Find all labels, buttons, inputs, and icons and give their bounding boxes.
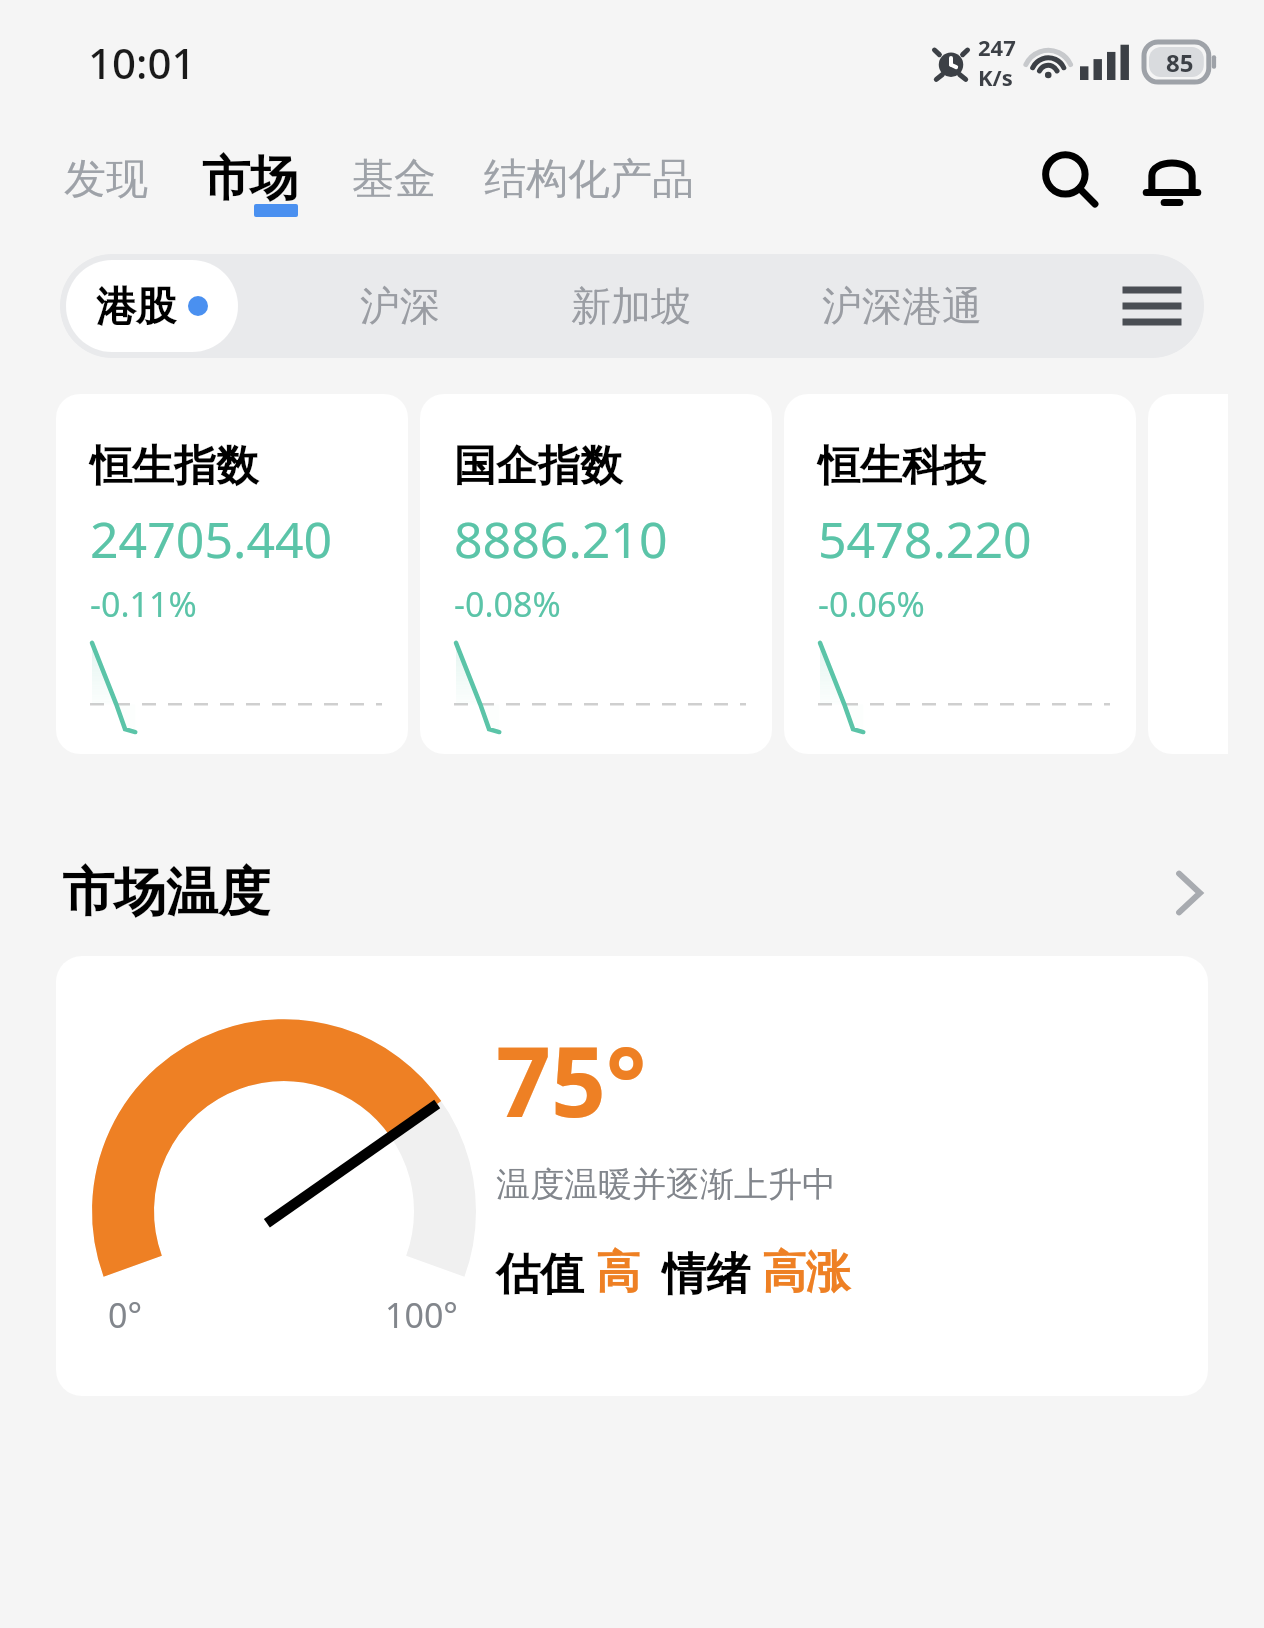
staticText: 0° bbox=[108, 1292, 142, 1338]
button[interactable]: 沪深港通 bbox=[812, 271, 992, 341]
staticText: 10:01 bbox=[88, 34, 196, 91]
staticText: 高涨 bbox=[762, 1245, 850, 1300]
staticText: 75° bbox=[496, 1014, 647, 1145]
staticText: 5478.220 bbox=[818, 505, 1032, 573]
staticText: 市场 bbox=[202, 149, 298, 209]
staticText: 基金 bbox=[352, 153, 436, 206]
staticText: 结构化产品 bbox=[484, 153, 694, 206]
button[interactable]: 结构化产品 bbox=[480, 147, 698, 212]
staticText: -0.08% bbox=[454, 581, 561, 627]
button[interactable]: 发现 bbox=[60, 147, 152, 212]
button[interactable]: 沪深 bbox=[350, 271, 450, 341]
button[interactable]: 基金 bbox=[348, 147, 440, 212]
staticText: 国企指数 bbox=[454, 440, 622, 493]
staticText: 情绪 bbox=[662, 1242, 762, 1302]
button[interactable]: Notifications bbox=[1128, 135, 1216, 223]
staticText: -0.06% bbox=[818, 581, 925, 627]
button[interactable]: 市场 bbox=[198, 143, 302, 215]
staticText: 估值 bbox=[496, 1242, 596, 1302]
button[interactable]: 恒生科技 bbox=[784, 394, 1136, 754]
button[interactable]: 市场温度 bbox=[0, 850, 1264, 936]
button[interactable]: 恒生指数 bbox=[56, 394, 408, 754]
button[interactable]: 港股 bbox=[66, 260, 238, 352]
staticText: 恒生指数 bbox=[90, 440, 258, 493]
staticText: 8886.210 bbox=[454, 505, 668, 573]
staticText: 高 bbox=[596, 1245, 640, 1300]
staticText: 市场温度 bbox=[62, 860, 270, 926]
staticText: 港股 bbox=[96, 281, 176, 331]
staticText: 85 bbox=[1166, 46, 1194, 79]
staticText: K/s bbox=[978, 62, 1013, 92]
staticText: 温度温暖并逐渐上升中 bbox=[496, 1163, 836, 1206]
button[interactable]: More markets bbox=[1114, 268, 1190, 344]
staticText: 24705.440 bbox=[90, 505, 333, 573]
staticText: 恒生科技 bbox=[818, 440, 986, 493]
staticText: 247 bbox=[978, 32, 1016, 62]
button[interactable]: 新加坡 bbox=[561, 271, 701, 341]
button[interactable]: 国企指数 bbox=[420, 394, 772, 754]
staticText: -0.11% bbox=[90, 581, 197, 627]
staticText: 100° bbox=[385, 1292, 458, 1338]
button[interactable]: 0° bbox=[56, 956, 1208, 1396]
button[interactable]: Search bbox=[1026, 135, 1114, 223]
staticText: 发现 bbox=[64, 153, 148, 206]
